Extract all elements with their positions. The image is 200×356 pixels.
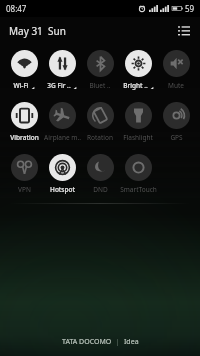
button[interactable]: GPS — [157, 100, 195, 142]
staticText: Flashlight — [123, 133, 153, 142]
staticText: Mute — [168, 81, 184, 90]
staticText: Bluet .. — [89, 81, 111, 90]
staticText: Idea — [124, 337, 139, 347]
button[interactable]: Bluet .. — [81, 48, 119, 90]
button[interactable]: Bright .. — [119, 48, 157, 90]
button[interactable]: Mute — [157, 48, 195, 90]
staticText: Bright .. — [123, 81, 148, 90]
staticText: 59 — [185, 3, 195, 14]
button[interactable]: Airplane m.. — [43, 100, 81, 142]
staticText: Rotation — [87, 133, 113, 142]
button[interactable]: Vibration — [5, 100, 43, 142]
staticText: GPS — [170, 133, 183, 142]
button[interactable]: Wi-Fi — [5, 48, 43, 90]
button[interactable]: Quick settings list — [174, 21, 194, 41]
staticText: Airplane m.. — [44, 133, 81, 142]
staticText: Wi-Fi — [13, 81, 29, 90]
staticText: 3G Fir .. — [47, 81, 71, 90]
staticText: TATA DOCOMO — [62, 337, 112, 347]
staticText: SmartTouch — [120, 185, 157, 194]
staticText: Hotspot — [50, 185, 75, 194]
staticText: | — [112, 337, 124, 347]
button[interactable]: Rotation — [81, 100, 119, 142]
button[interactable]: 3G Fir .. — [43, 48, 81, 90]
staticText: 08:47 — [6, 3, 27, 14]
button[interactable]: DND — [81, 152, 119, 194]
staticText: DND — [93, 185, 108, 194]
staticText: Vibration — [10, 133, 39, 142]
staticText: VPN — [18, 185, 31, 194]
button[interactable]: Hotspot — [43, 152, 81, 194]
button[interactable]: Flashlight — [119, 100, 157, 142]
button[interactable]: SmartTouch — [119, 152, 157, 194]
button[interactable]: VPN — [5, 152, 43, 194]
staticText: May 31 Sun — [9, 24, 66, 38]
